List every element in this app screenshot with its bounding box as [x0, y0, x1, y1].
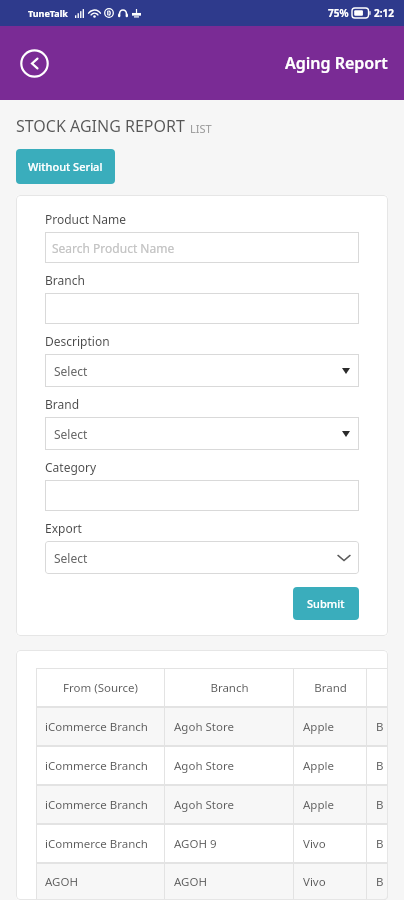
button[interactable]: iCommerce Branch	[36, 707, 388, 746]
button[interactable]: Back	[14, 43, 54, 83]
staticText: AGOH 9	[174, 836, 217, 852]
staticText: Agoh Store	[174, 719, 234, 735]
staticText: AGOH	[45, 874, 78, 890]
button[interactable]: Select	[45, 354, 359, 387]
staticText: Branch	[45, 272, 85, 288]
staticText: B	[376, 797, 379, 813]
staticText: Category	[45, 459, 97, 475]
staticText: Without Serial	[28, 159, 103, 174]
button[interactable]: iCommerce Branch	[36, 746, 388, 785]
staticText: TuneTalk	[28, 7, 68, 19]
button[interactable]: AGOH	[36, 863, 388, 900]
staticText: Apple	[303, 758, 334, 774]
button[interactable]: Select	[45, 541, 359, 574]
staticText: Search Product Name	[52, 240, 175, 256]
staticText: B	[376, 719, 379, 735]
button[interactable]	[45, 293, 359, 324]
staticText: Select	[54, 363, 88, 379]
staticText: Select	[54, 550, 88, 566]
staticText: iCommerce Branch	[45, 758, 148, 774]
staticText: Apple	[303, 719, 334, 735]
staticText: B	[376, 758, 379, 774]
button[interactable]: Submit	[293, 587, 359, 620]
staticText: Branch	[210, 680, 249, 696]
button[interactable]: Select	[45, 417, 359, 450]
staticText: iCommerce Branch	[45, 797, 148, 813]
staticText: 2:12	[374, 6, 394, 20]
staticText: Apple	[303, 797, 334, 813]
staticText: From (Source)	[63, 680, 138, 696]
staticText: Select	[54, 426, 88, 442]
button[interactable]: Search Product Name	[45, 232, 359, 263]
staticText: LIST	[190, 121, 212, 136]
staticText: Aging Report	[285, 52, 388, 74]
staticText: Agoh Store	[174, 758, 234, 774]
button[interactable]: iCommerce Branch	[36, 785, 388, 824]
button[interactable]: From (Source)	[36, 668, 388, 707]
button[interactable]	[45, 480, 359, 511]
staticText: AGOH	[174, 874, 207, 890]
button[interactable]: Without Serial	[16, 149, 115, 184]
staticText: Vivo	[303, 874, 326, 890]
staticText: Brand	[45, 396, 80, 412]
staticText: Brand	[314, 680, 347, 696]
staticText: iCommerce Branch	[45, 836, 148, 852]
staticText: Agoh Store	[174, 797, 234, 813]
staticText: Description	[45, 333, 110, 349]
staticText: Export	[45, 520, 82, 536]
staticText: B	[376, 874, 379, 890]
staticText: Vivo	[303, 836, 326, 852]
staticText: 75%	[328, 6, 349, 20]
staticText: STOCK AGING REPORT	[16, 115, 185, 137]
staticText: iCommerce Branch	[45, 719, 148, 735]
button[interactable]: iCommerce Branch	[36, 824, 388, 863]
staticText: B	[376, 836, 379, 852]
staticText: Submit	[307, 596, 345, 611]
staticText: Product Name	[45, 211, 127, 227]
